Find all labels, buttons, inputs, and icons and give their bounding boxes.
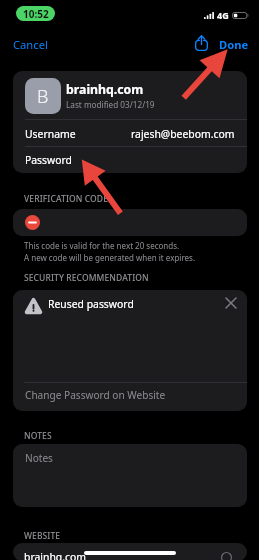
staticText: Password — [25, 153, 72, 167]
staticText: Reused password — [48, 297, 134, 311]
staticText: Cancel — [13, 37, 48, 52]
staticText: Last modified 03/12/19 — [66, 99, 155, 110]
staticText: This code is valid for the next 20 secon… — [24, 240, 180, 251]
staticText: Change Password on Website — [25, 388, 166, 402]
button[interactable]: Dismiss — [222, 294, 240, 312]
staticText: 10:52 — [23, 7, 49, 21]
staticText: WEBSITE — [24, 530, 61, 542]
staticText: VERIFICATION CODE — [24, 193, 109, 205]
button[interactable]: Done — [214, 33, 254, 56]
button[interactable]: Change Password on Website — [13, 380, 247, 409]
staticText: brainhq.com — [66, 81, 144, 98]
button[interactable]: Share — [190, 32, 212, 54]
staticText: Done — [219, 37, 249, 52]
staticText: SECURITY RECOMMENDATION — [24, 272, 149, 284]
staticText: rajesh@beebom.com — [131, 127, 235, 141]
staticText: 4G — [217, 9, 229, 21]
staticText: NOTES — [24, 430, 52, 442]
staticText: brainhq.com — [24, 550, 86, 560]
staticText: Username — [25, 127, 76, 141]
button[interactable]: Password — [13, 147, 247, 173]
staticText: A new code will be generated when it exp… — [24, 252, 196, 263]
staticText: B — [37, 84, 49, 109]
button[interactable]: Cancel — [8, 33, 53, 56]
staticText: Notes — [25, 451, 53, 465]
button[interactable]: Username — [13, 120, 247, 147]
